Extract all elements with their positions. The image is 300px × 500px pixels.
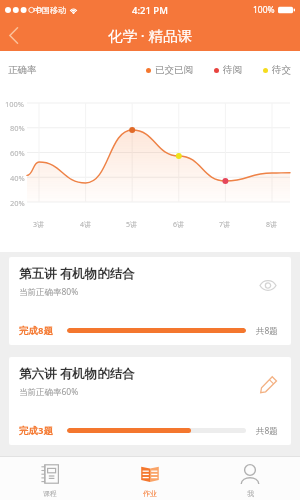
button[interactable]: Preview answers bbox=[253, 270, 283, 300]
staticText: 4讲 bbox=[80, 220, 92, 230]
staticText: 完成8题 bbox=[19, 324, 53, 337]
button[interactable]: Back bbox=[0, 20, 34, 51]
staticText: 当前正确率80% bbox=[19, 286, 79, 298]
staticText: 作业 bbox=[143, 489, 157, 498]
staticText: 课程 bbox=[43, 489, 57, 498]
staticText: 6讲 bbox=[173, 220, 185, 230]
button[interactable]: Edit homework bbox=[253, 369, 283, 399]
staticText: 60% bbox=[10, 148, 25, 158]
staticText: 正确率 bbox=[8, 64, 37, 76]
staticText: 5讲 bbox=[126, 220, 138, 230]
button[interactable]: 第六讲 有机物的结合 bbox=[9, 357, 291, 445]
staticText: 100% bbox=[253, 4, 275, 16]
staticText: 我 bbox=[247, 489, 254, 498]
staticText: 40% bbox=[10, 173, 25, 183]
staticText: 第六讲 有机物的结合 bbox=[19, 365, 135, 382]
staticText: 100% bbox=[5, 99, 25, 109]
staticText: 8讲 bbox=[266, 220, 278, 230]
staticText: 待阅 bbox=[223, 64, 242, 76]
staticText: 共8题 bbox=[256, 325, 278, 337]
staticText: 80% bbox=[10, 123, 25, 133]
button[interactable]: 作业 bbox=[100, 457, 200, 500]
button[interactable]: 我 bbox=[200, 457, 300, 500]
button[interactable]: 第五讲 有机物的结合 bbox=[9, 257, 291, 345]
button[interactable]: 课程 bbox=[0, 457, 100, 500]
staticText: 3讲 bbox=[33, 220, 45, 230]
staticText: 待交 bbox=[272, 64, 291, 76]
staticText: 化学 · 精品课 bbox=[108, 25, 192, 45]
staticText: 当前正确率60% bbox=[19, 386, 79, 398]
staticText: 20% bbox=[10, 198, 25, 208]
staticText: 第五讲 有机物的结合 bbox=[19, 265, 135, 282]
staticText: 完成3题 bbox=[19, 424, 53, 437]
staticText: 7讲 bbox=[219, 220, 231, 230]
staticText: 共8题 bbox=[256, 425, 278, 437]
staticText: 4:21 PM bbox=[132, 4, 168, 17]
staticText: 已交已阅 bbox=[155, 64, 193, 76]
staticText: 中国移动 bbox=[34, 5, 66, 15]
